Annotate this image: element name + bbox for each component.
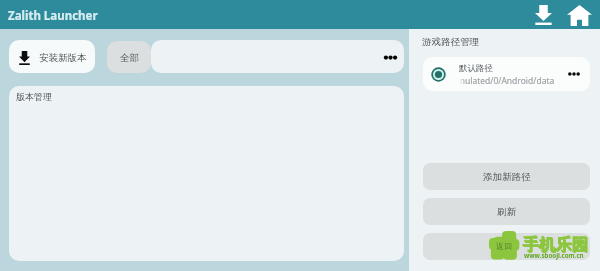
button[interactable]: Path options (564, 64, 584, 84)
staticText: 添加新路径 (483, 171, 531, 183)
button[interactable]: More options (379, 46, 401, 68)
button[interactable]: 默认路径 (423, 57, 590, 91)
staticText: mulated/0/Android/data (459, 76, 555, 84)
staticText: 默认路径 (459, 63, 493, 74)
staticText: 刷新 (497, 206, 516, 218)
button[interactable]: 返回 (423, 233, 590, 260)
staticText: 手机乐园 (522, 234, 588, 255)
button[interactable]: Home (566, 2, 592, 28)
button[interactable]: 添加新路径 (423, 163, 590, 190)
button[interactable]: 安装新版本 (9, 40, 95, 73)
staticText: 返回 (497, 241, 516, 253)
button[interactable]: 刷新 (423, 198, 590, 225)
staticText: 安装新版本 (39, 52, 87, 64)
staticText: Zalith Launcher (8, 8, 98, 24)
button[interactable]: 全部 (107, 41, 151, 73)
staticText: 全部 (120, 52, 139, 64)
staticText: 版本管理 (16, 91, 52, 102)
button[interactable]: Download (530, 2, 556, 28)
staticText: 手机乐园 (523, 235, 589, 256)
staticText: 返回 (496, 241, 512, 251)
staticText: 游戏路径管理 (422, 36, 479, 48)
staticText: www.sbooji.com.cn (524, 251, 584, 259)
